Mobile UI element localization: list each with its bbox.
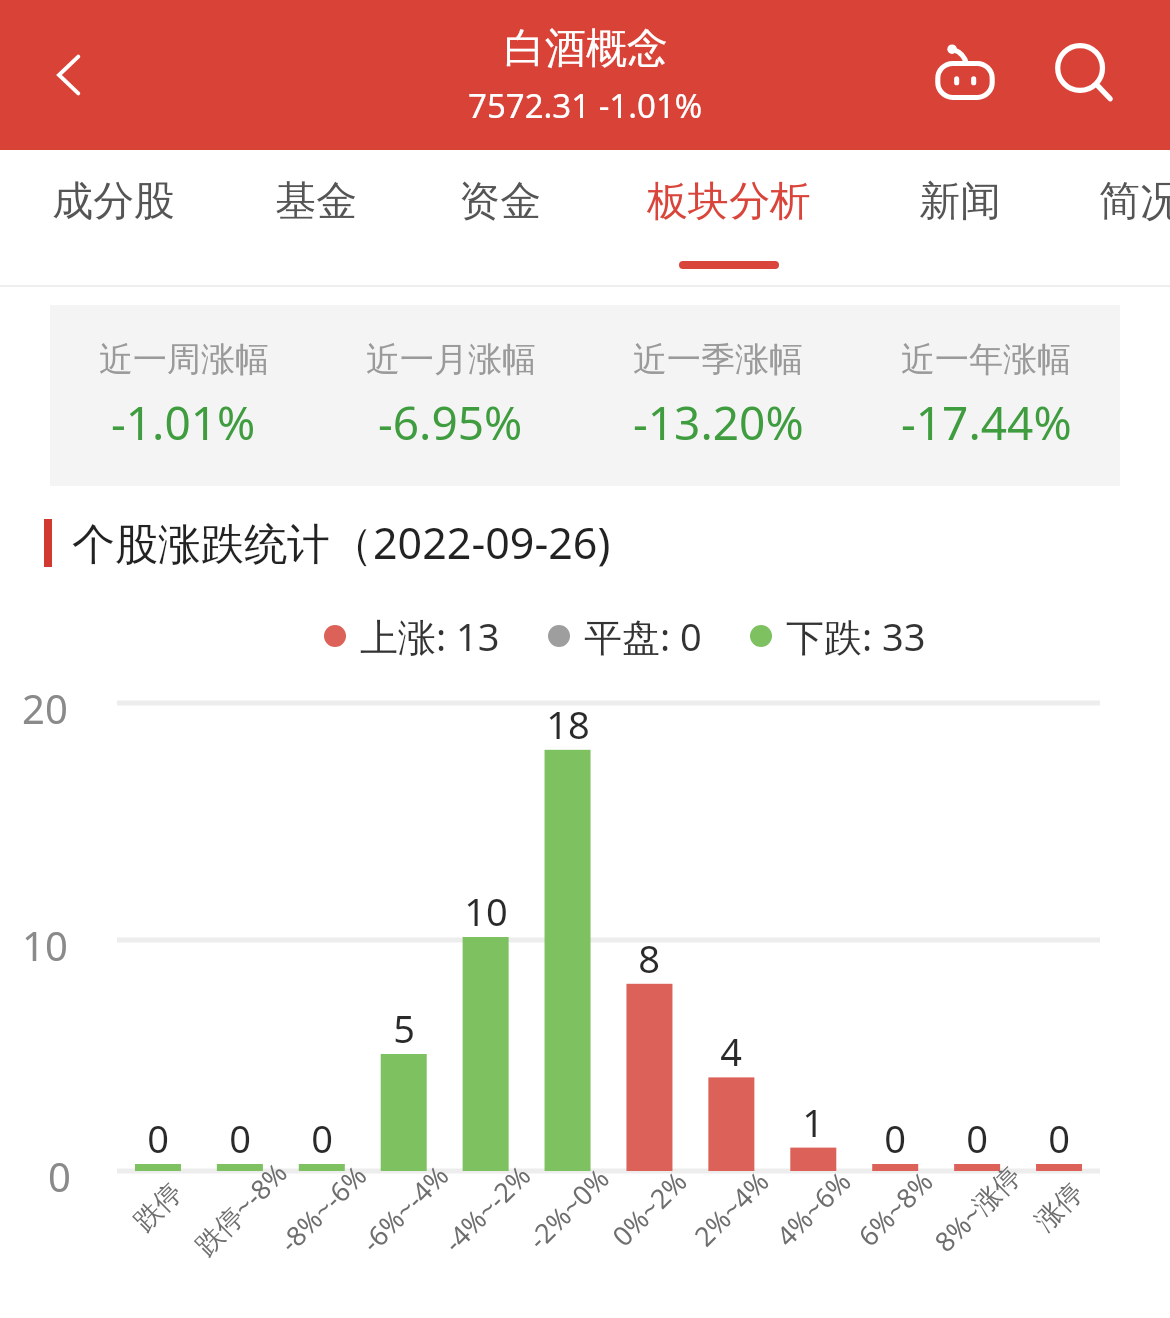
staticText: 0 xyxy=(147,1112,169,1164)
staticText: 8%~涨停 xyxy=(926,1157,1028,1260)
staticText: 基金 xyxy=(275,176,357,228)
staticText: -6%~-4% xyxy=(353,1157,456,1260)
staticText: 白酒概念 xyxy=(504,23,668,75)
button[interactable]: 资金 xyxy=(456,150,544,287)
button[interactable]: Search xyxy=(1035,25,1135,125)
staticText: 10 xyxy=(464,885,508,937)
staticText: 板块分析 xyxy=(647,176,811,228)
button[interactable]: 新闻 xyxy=(916,150,1004,287)
staticText: 平盘: 0 xyxy=(584,610,702,662)
staticText: 7572.31 -1.01% xyxy=(468,83,703,128)
staticText: 18 xyxy=(546,698,590,750)
button[interactable]: 近一周涨幅 xyxy=(50,305,1120,486)
staticText: 上涨: 13 xyxy=(360,610,500,662)
staticText: 近一月涨幅 xyxy=(366,338,536,381)
staticText: 10 xyxy=(22,918,68,972)
staticText: 4%~6% xyxy=(767,1163,859,1254)
staticText: -1.01% xyxy=(111,391,256,454)
staticText: 20 xyxy=(22,681,68,735)
button[interactable]: Back xyxy=(30,35,110,115)
staticText: 近一季涨幅 xyxy=(633,338,803,381)
button[interactable]: 简况 xyxy=(1096,150,1170,287)
staticText: 成分股 xyxy=(52,176,175,228)
staticText: 0 xyxy=(1048,1112,1070,1164)
staticText: 5 xyxy=(393,1002,415,1054)
staticText: 0 xyxy=(884,1112,906,1164)
staticText: 近一周涨幅 xyxy=(99,338,269,381)
staticText: 跌停~-8% xyxy=(186,1154,295,1263)
staticText: 资金 xyxy=(459,176,541,228)
staticText: 涨停 xyxy=(1028,1176,1090,1238)
staticText: 4 xyxy=(720,1025,742,1077)
staticText: 0 xyxy=(48,1149,71,1203)
staticText: 0 xyxy=(311,1112,333,1164)
staticText: 1 xyxy=(802,1096,824,1148)
staticText: 跌停 xyxy=(127,1176,189,1238)
staticText: 0 xyxy=(966,1112,988,1164)
staticText: -2%~0% xyxy=(520,1160,616,1257)
staticText: 近一年涨幅 xyxy=(901,338,1071,381)
button[interactable]: Assistant xyxy=(915,25,1015,125)
staticText: -17.44% xyxy=(901,391,1072,454)
button[interactable]: 成分股 xyxy=(47,150,179,287)
staticText: 新闻 xyxy=(919,176,1001,228)
staticText: -8%~-6% xyxy=(271,1157,374,1260)
staticText: 个股涨跌统计（2022-09-26) xyxy=(72,513,611,572)
staticText: -4%~-2% xyxy=(435,1157,538,1260)
staticText: 0 xyxy=(229,1112,251,1164)
button[interactable]: 板块分析 xyxy=(641,150,817,287)
staticText: 0%~2% xyxy=(603,1163,695,1254)
staticText: -6.95% xyxy=(378,391,523,454)
staticText: 8 xyxy=(638,932,660,984)
staticText: 6%~8% xyxy=(849,1163,941,1254)
staticText: 下跌: 33 xyxy=(786,610,926,662)
button[interactable]: 基金 xyxy=(272,150,360,287)
staticText: -13.20% xyxy=(633,391,804,454)
staticText: 简况 xyxy=(1099,176,1170,228)
staticText: 2%~4% xyxy=(685,1163,777,1254)
